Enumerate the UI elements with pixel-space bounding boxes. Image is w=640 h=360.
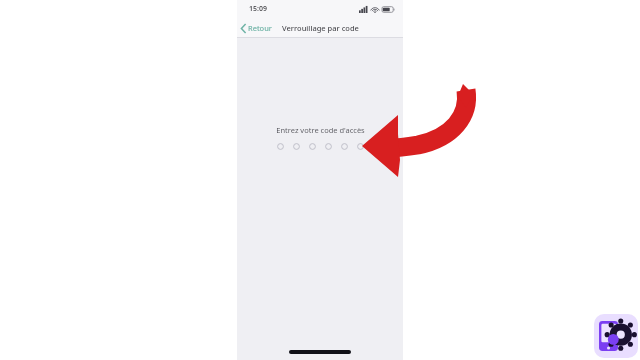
- staticText: Verrouillage par code: [282, 23, 359, 33]
- staticText: Entrez votre code d'accès: [276, 125, 365, 135]
- button[interactable]: App logo: [594, 314, 638, 358]
- staticText: 15:09: [249, 4, 267, 14]
- staticText: Retour: [248, 23, 272, 33]
- button[interactable]: Retour: [237, 21, 276, 35]
